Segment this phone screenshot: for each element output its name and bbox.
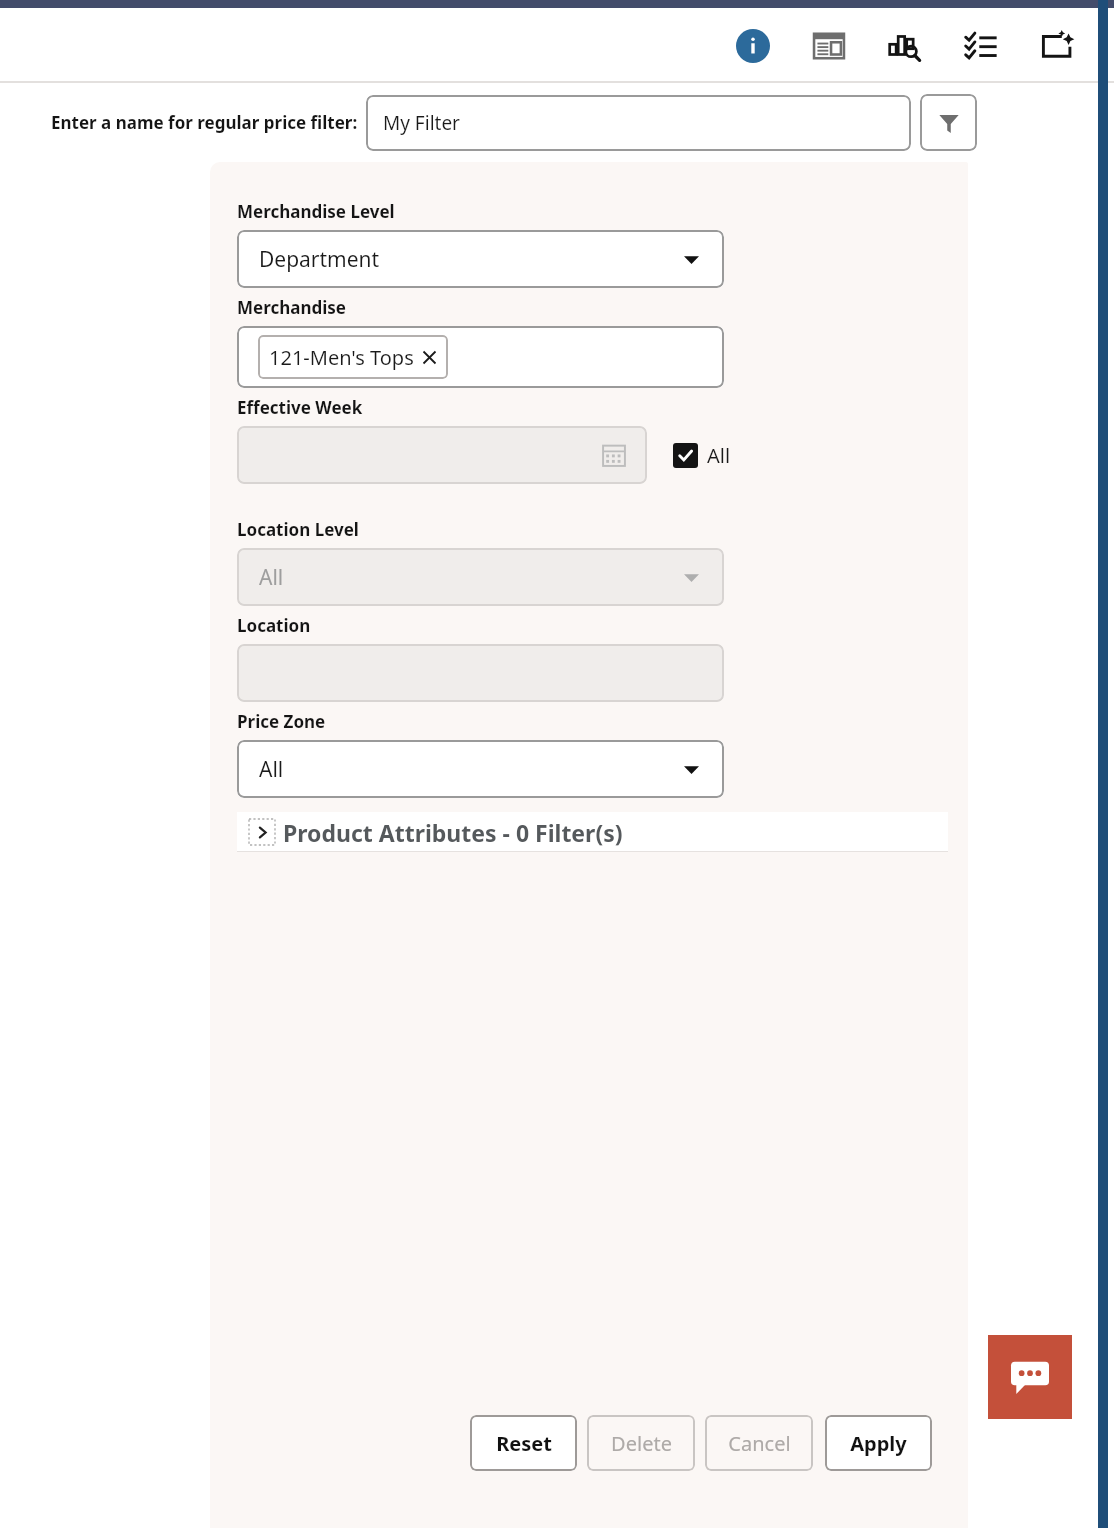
staticText: Effective Week [237,396,363,419]
button[interactable]: Delete [587,1415,695,1471]
button[interactable] [237,644,724,702]
button[interactable]: Department [237,230,724,288]
staticText: My Filter [383,110,460,136]
staticText: Merchandise [237,296,347,319]
staticText: Delete [611,1430,672,1457]
button[interactable]: Chat support [988,1335,1072,1419]
button[interactable]: Notes [806,23,852,69]
staticText: Merchandise Level [237,200,395,223]
button[interactable]: 121-Men's Tops [269,335,437,379]
staticText: Department [259,245,380,274]
button[interactable]: Reset [470,1415,577,1471]
staticText: Enter a name for regular price filter: [51,111,358,134]
button[interactable]: Create [1034,23,1080,69]
button[interactable]: All [237,740,724,798]
button[interactable]: Apply [825,1415,932,1471]
button[interactable]: Information [730,23,776,69]
staticText: All [707,442,731,469]
button[interactable]: 121-Men's Tops [237,326,724,388]
staticText: Location Level [237,518,359,541]
staticText: All [259,563,284,592]
staticText: Reset [496,1430,552,1457]
staticText: All [259,755,284,784]
button[interactable]: All [237,548,724,606]
staticText: Cancel [728,1430,791,1457]
button[interactable] [237,426,647,484]
staticText: 121-Men's Tops [269,344,414,371]
staticText: Product Attributes - 0 Filter(s) [283,817,623,848]
button[interactable]: Tasks [958,23,1004,69]
staticText: Location [237,614,311,637]
button[interactable]: Product Attributes - 0 Filter(s) [237,812,948,852]
button[interactable]: Filter [920,94,977,151]
button[interactable]: Cancel [705,1415,813,1471]
button[interactable]: My Filter [366,95,911,151]
staticText: Price Zone [237,710,326,733]
button[interactable]: Insights [882,23,928,69]
button[interactable]: All [669,438,735,473]
staticText: Apply [850,1430,907,1457]
